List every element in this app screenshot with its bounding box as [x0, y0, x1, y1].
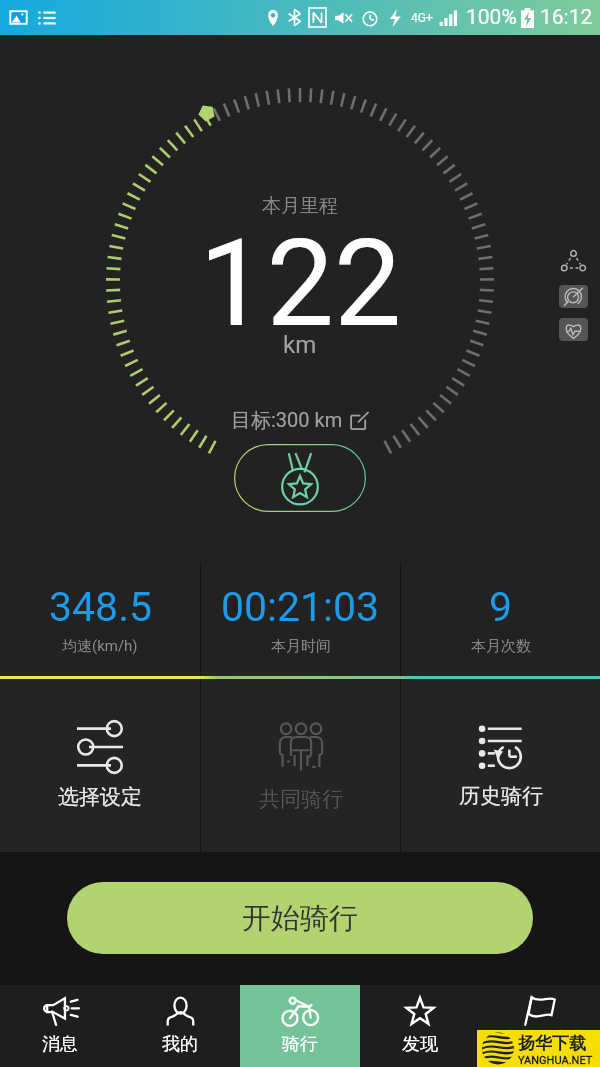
staticText: 骑行 [282, 1033, 318, 1056]
other: 我的 [166, 997, 195, 1026]
other: 心率 [563, 319, 584, 340]
other: 速度 [563, 286, 584, 307]
other: 活动 [524, 996, 556, 1025]
staticText: 开始骑行 [242, 900, 358, 937]
button[interactable]: 分享 [559, 248, 588, 274]
staticText: 本月次数 [471, 637, 531, 656]
button[interactable]: 9 [401, 562, 600, 676]
other: 选择设定 [77, 724, 123, 770]
other: 发现 [404, 996, 436, 1026]
staticText: 100% [466, 5, 517, 30]
button[interactable]: 速度 [559, 285, 588, 308]
button[interactable]: 消息 [0, 985, 120, 1067]
staticText: 我的 [162, 1033, 198, 1056]
staticText: 本月里程 [262, 194, 338, 218]
staticText: 历史骑行 [459, 783, 543, 809]
other: 成就 [272, 451, 328, 505]
other: 历史骑行 [479, 725, 523, 769]
staticText: 本月时间 [271, 637, 331, 656]
button[interactable]: 共同骑行 [201, 679, 400, 855]
staticText: 发现 [402, 1033, 438, 1056]
staticText: 9 [489, 583, 513, 631]
button[interactable]: 00:21:03 [201, 562, 400, 676]
staticText: km [283, 331, 317, 357]
button[interactable]: 历史骑行 [401, 679, 600, 855]
button[interactable]: 活动 [480, 985, 600, 1067]
staticText [538, 1032, 543, 1057]
other: 消息 [42, 997, 79, 1026]
other: 共同骑行 [278, 722, 324, 772]
staticText: 00:21:03 [221, 583, 380, 631]
staticText: 122 [199, 214, 402, 334]
button[interactable]: 心率 [559, 318, 588, 341]
button[interactable]: 348.5 [0, 562, 200, 676]
staticText: 348.5 [49, 583, 152, 631]
staticText: 16:12 [540, 5, 593, 30]
button[interactable]: 开始骑行 [67, 882, 533, 954]
other: 编辑目标 [350, 411, 369, 430]
button[interactable]: 发现 [360, 985, 480, 1067]
staticText: 选择设定 [58, 784, 142, 810]
staticText: 共同骑行 [259, 786, 343, 812]
other: 骑行 [281, 996, 320, 1026]
button[interactable]: 我的 [120, 985, 240, 1067]
other: 分享 [562, 251, 585, 271]
staticText: 4G+ [411, 11, 433, 25]
staticText: 扬华下载 [518, 1033, 586, 1054]
staticText: YANGHUA.NET [518, 1054, 593, 1067]
button[interactable]: 骑行 [240, 985, 360, 1067]
staticText: 均速(km/h) [62, 637, 138, 656]
button[interactable]: 选择设定 [0, 679, 200, 855]
button[interactable]: 成就 [234, 444, 366, 512]
staticText: 消息 [42, 1033, 78, 1056]
staticText: 目标:300 km [231, 408, 343, 433]
